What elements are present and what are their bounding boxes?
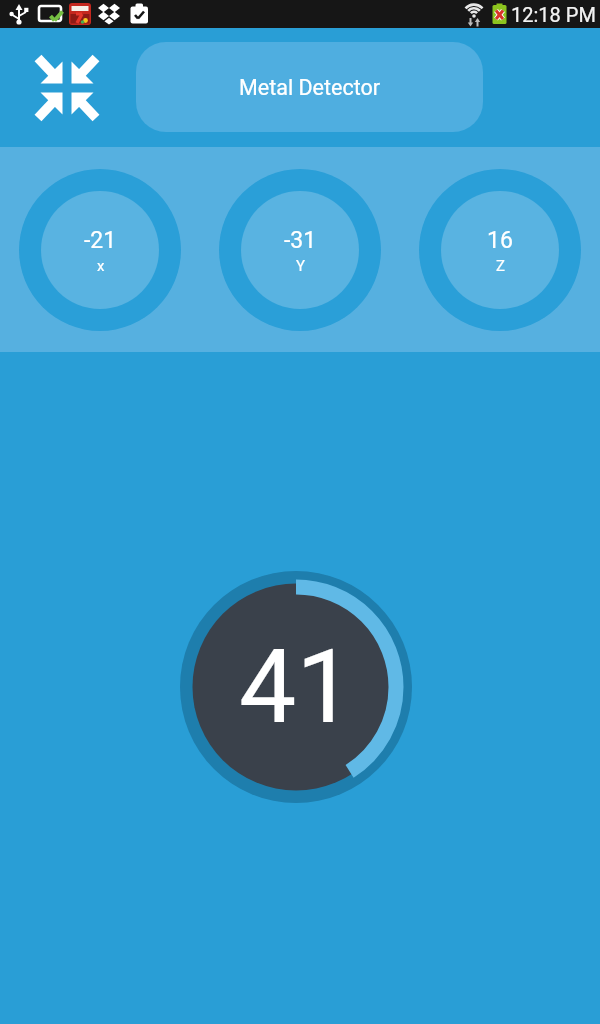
button[interactable]: -31 — [219, 169, 381, 331]
button[interactable]: -21 — [19, 169, 181, 331]
staticText: 41 — [239, 627, 354, 747]
button[interactable] — [36, 56, 98, 120]
staticText: 12:18 PM — [511, 3, 596, 26]
staticText: Z — [496, 257, 505, 275]
staticText: 16 — [487, 227, 513, 254]
staticText: Metal Detector — [239, 75, 381, 100]
staticText: -31 — [284, 227, 317, 254]
staticText: -21 — [84, 227, 117, 254]
button[interactable]: Metal Detector — [136, 42, 483, 132]
staticText: x — [97, 257, 105, 275]
button[interactable]: 16 — [419, 169, 581, 331]
staticText: Y — [296, 257, 306, 275]
